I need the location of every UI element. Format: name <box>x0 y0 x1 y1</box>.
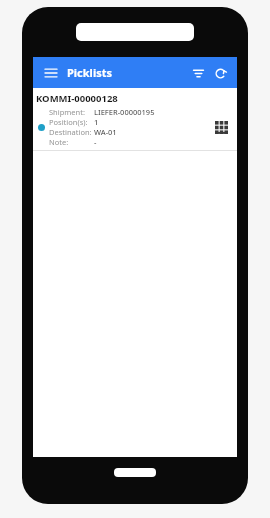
staticText: 1 <box>94 117 99 127</box>
staticText: LIEFER-00000195 <box>94 107 155 117</box>
staticText: Shipment: <box>49 107 85 117</box>
staticText: Note: <box>49 137 69 147</box>
staticText: - <box>94 137 97 147</box>
staticText: Picklists <box>67 65 113 80</box>
staticText: KOMMI-00000128 <box>36 92 118 105</box>
staticText: Destination: <box>49 127 92 137</box>
button[interactable]: Open navigation menu <box>39 61 63 85</box>
button[interactable]: Scan barcode <box>211 117 231 137</box>
staticText: WA-01 <box>94 127 117 137</box>
button[interactable]: Refresh <box>209 62 231 84</box>
button[interactable]: Filter <box>187 62 209 84</box>
button[interactable]: KOMMI-00000128 <box>33 88 237 151</box>
staticText: Position(s): <box>49 117 88 127</box>
